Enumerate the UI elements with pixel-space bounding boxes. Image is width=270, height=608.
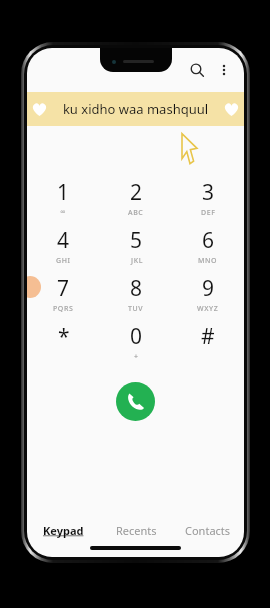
button[interactable]: 0 bbox=[100, 322, 172, 370]
staticText: Keypad bbox=[43, 523, 84, 538]
staticText: JKL bbox=[131, 256, 143, 266]
staticText: ∞ bbox=[60, 208, 67, 216]
button[interactable]: ku xidho waa mashquul bbox=[27, 92, 244, 126]
button[interactable]: * bbox=[27, 322, 100, 370]
staticText: 2 bbox=[130, 178, 143, 207]
staticText: ABC bbox=[128, 208, 144, 218]
staticText: 9 bbox=[202, 274, 215, 303]
staticText: ku xidho waa mashquul bbox=[48, 100, 223, 118]
staticText: 3 bbox=[202, 178, 215, 207]
staticText: + bbox=[134, 352, 139, 362]
staticText: 0 bbox=[130, 322, 143, 351]
staticText: PQRS bbox=[53, 304, 74, 314]
button[interactable]: 3 bbox=[172, 178, 244, 226]
button[interactable]: 1 bbox=[27, 178, 100, 226]
button[interactable]: 9 bbox=[172, 274, 244, 322]
button[interactable]: 7 bbox=[27, 274, 100, 322]
button[interactable]: 5 bbox=[100, 226, 172, 274]
staticText: MNO bbox=[198, 256, 218, 266]
button[interactable]: # bbox=[172, 322, 244, 370]
staticText: 6 bbox=[202, 226, 215, 255]
button[interactable]: 4 bbox=[27, 226, 100, 274]
button[interactable]: Search bbox=[184, 57, 210, 83]
staticText: 5 bbox=[130, 226, 143, 255]
staticText: * bbox=[58, 322, 70, 351]
staticText: Recents bbox=[116, 523, 157, 538]
button[interactable]: Keypad bbox=[27, 523, 100, 553]
staticText: DEF bbox=[201, 208, 216, 218]
staticText: GHI bbox=[56, 256, 71, 266]
button[interactable]: More options bbox=[212, 58, 236, 82]
staticText: Contacts bbox=[185, 523, 231, 538]
staticText: TUV bbox=[128, 304, 144, 314]
button[interactable]: 8 bbox=[100, 274, 172, 322]
staticText: # bbox=[201, 322, 215, 351]
button[interactable]: Contacts bbox=[172, 523, 244, 553]
staticText: 7 bbox=[57, 274, 70, 303]
staticText: 8 bbox=[130, 274, 143, 303]
button[interactable]: 2 bbox=[100, 178, 172, 226]
staticText: 4 bbox=[57, 226, 70, 255]
button[interactable]: Call bbox=[116, 382, 155, 421]
button[interactable]: 6 bbox=[172, 226, 244, 274]
staticText: 1 bbox=[57, 178, 70, 207]
button[interactable]: Recents bbox=[100, 523, 172, 553]
staticText: WXYZ bbox=[197, 304, 219, 314]
